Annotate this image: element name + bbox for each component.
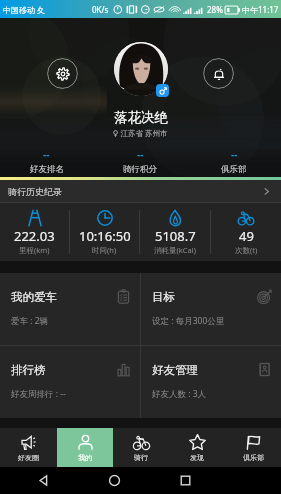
staticText: 好友人数 : 3人 (152, 388, 207, 400)
staticText: -- (137, 147, 144, 161)
button[interactable]: 好友管理 (141, 346, 281, 418)
staticText: 发现 (190, 453, 204, 462)
staticText: -- (231, 147, 238, 161)
button[interactable]: 5108.7 (140, 203, 210, 261)
staticText: 0K/s (92, 4, 109, 15)
button[interactable]: 骑行 (113, 428, 169, 467)
staticText: 骑行 (134, 453, 148, 462)
staticText: 222.03 (14, 227, 55, 245)
button[interactable]: 目标 (141, 273, 281, 345)
button[interactable]: -- (93, 145, 187, 177)
staticText: 骑行历史纪录 (8, 186, 62, 197)
staticText: 目标 (152, 290, 175, 304)
staticText: 中午11:17 (242, 4, 279, 15)
staticText: 好友管理 (152, 363, 198, 377)
button[interactable]: 10:16:50 (70, 203, 139, 261)
staticText: ♀ 江苏省 苏州市 (113, 128, 168, 138)
staticText: 5108.7 (155, 227, 196, 245)
button[interactable]: Notifications (203, 58, 234, 89)
staticText: 俱乐部 (221, 164, 247, 175)
staticText: 次数(t) (235, 245, 258, 255)
button[interactable]: 我的爱车 (0, 273, 140, 345)
button[interactable]: 好友圈 (0, 428, 57, 467)
staticText: 消耗量(kCal) (154, 245, 196, 255)
staticText: 时间(h) (92, 245, 117, 255)
button[interactable]: 排行榜 (0, 346, 140, 418)
staticText: 49 (239, 227, 254, 245)
staticText: 设定 : 每月300公里 (152, 315, 225, 327)
staticText: 我的爱车 (11, 290, 57, 304)
staticText: 好友周排行 : -- (11, 388, 66, 400)
staticText: 28% (207, 4, 223, 15)
button[interactable]: 我的 (57, 428, 113, 467)
button[interactable]: 骑行历史纪录 (0, 180, 281, 202)
button[interactable]: 俱乐部 (225, 428, 281, 467)
staticText: 排行榜 (11, 363, 46, 377)
staticText: 好友排名 (30, 164, 64, 175)
staticText: 10:16:50 (79, 227, 131, 245)
staticText: 好友圈 (18, 453, 39, 462)
button[interactable]: 发现 (169, 428, 225, 467)
button[interactable]: -- (0, 145, 93, 177)
staticText: 爱车 : 2辆 (11, 315, 49, 327)
button[interactable]: Home (108, 474, 121, 487)
staticText: 落花决绝 (114, 109, 168, 126)
button[interactable]: Recents (179, 474, 192, 487)
staticText: 里程(km) (19, 245, 50, 255)
staticText: -- (43, 147, 50, 161)
button[interactable]: 49 (211, 203, 281, 261)
button[interactable]: Profile photo (114, 42, 168, 96)
staticText: 中国移动 夊 (3, 4, 46, 15)
button[interactable]: Settings (47, 58, 78, 89)
button[interactable]: -- (187, 145, 281, 177)
button[interactable]: 222.03 (0, 203, 69, 261)
staticText: 骑行积分 (123, 164, 157, 175)
button[interactable]: Back (37, 474, 50, 487)
staticText: 俱乐部 (243, 453, 264, 462)
staticText: 我的 (78, 453, 92, 462)
